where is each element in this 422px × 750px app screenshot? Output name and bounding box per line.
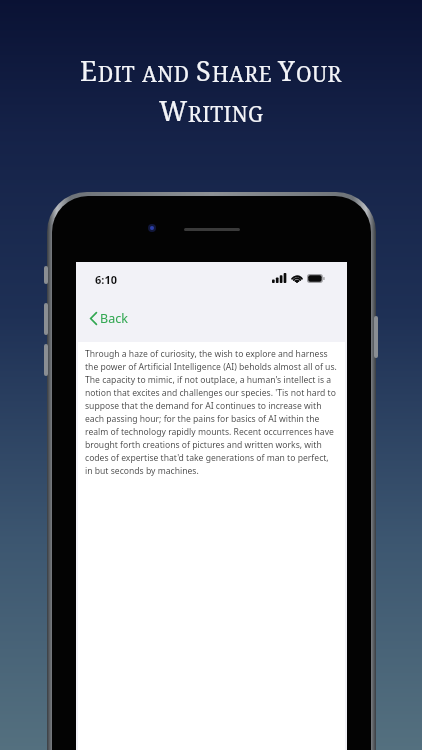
staticText: Through a haze of curiosity, the wish to… (85, 348, 338, 476)
staticText (272, 60, 278, 89)
staticText: E (80, 52, 98, 89)
staticText: RITING (188, 100, 264, 129)
staticText: 6:10 (95, 272, 117, 287)
staticText: HARE (212, 60, 272, 89)
staticText: Y (278, 52, 296, 89)
staticText: DIT (98, 60, 136, 89)
button[interactable]: Back (84, 306, 134, 331)
staticText: OUR (296, 60, 342, 89)
staticText: S (196, 52, 212, 89)
staticText: AND (142, 60, 190, 89)
staticText: W (159, 92, 188, 129)
staticText: Back (100, 310, 128, 327)
